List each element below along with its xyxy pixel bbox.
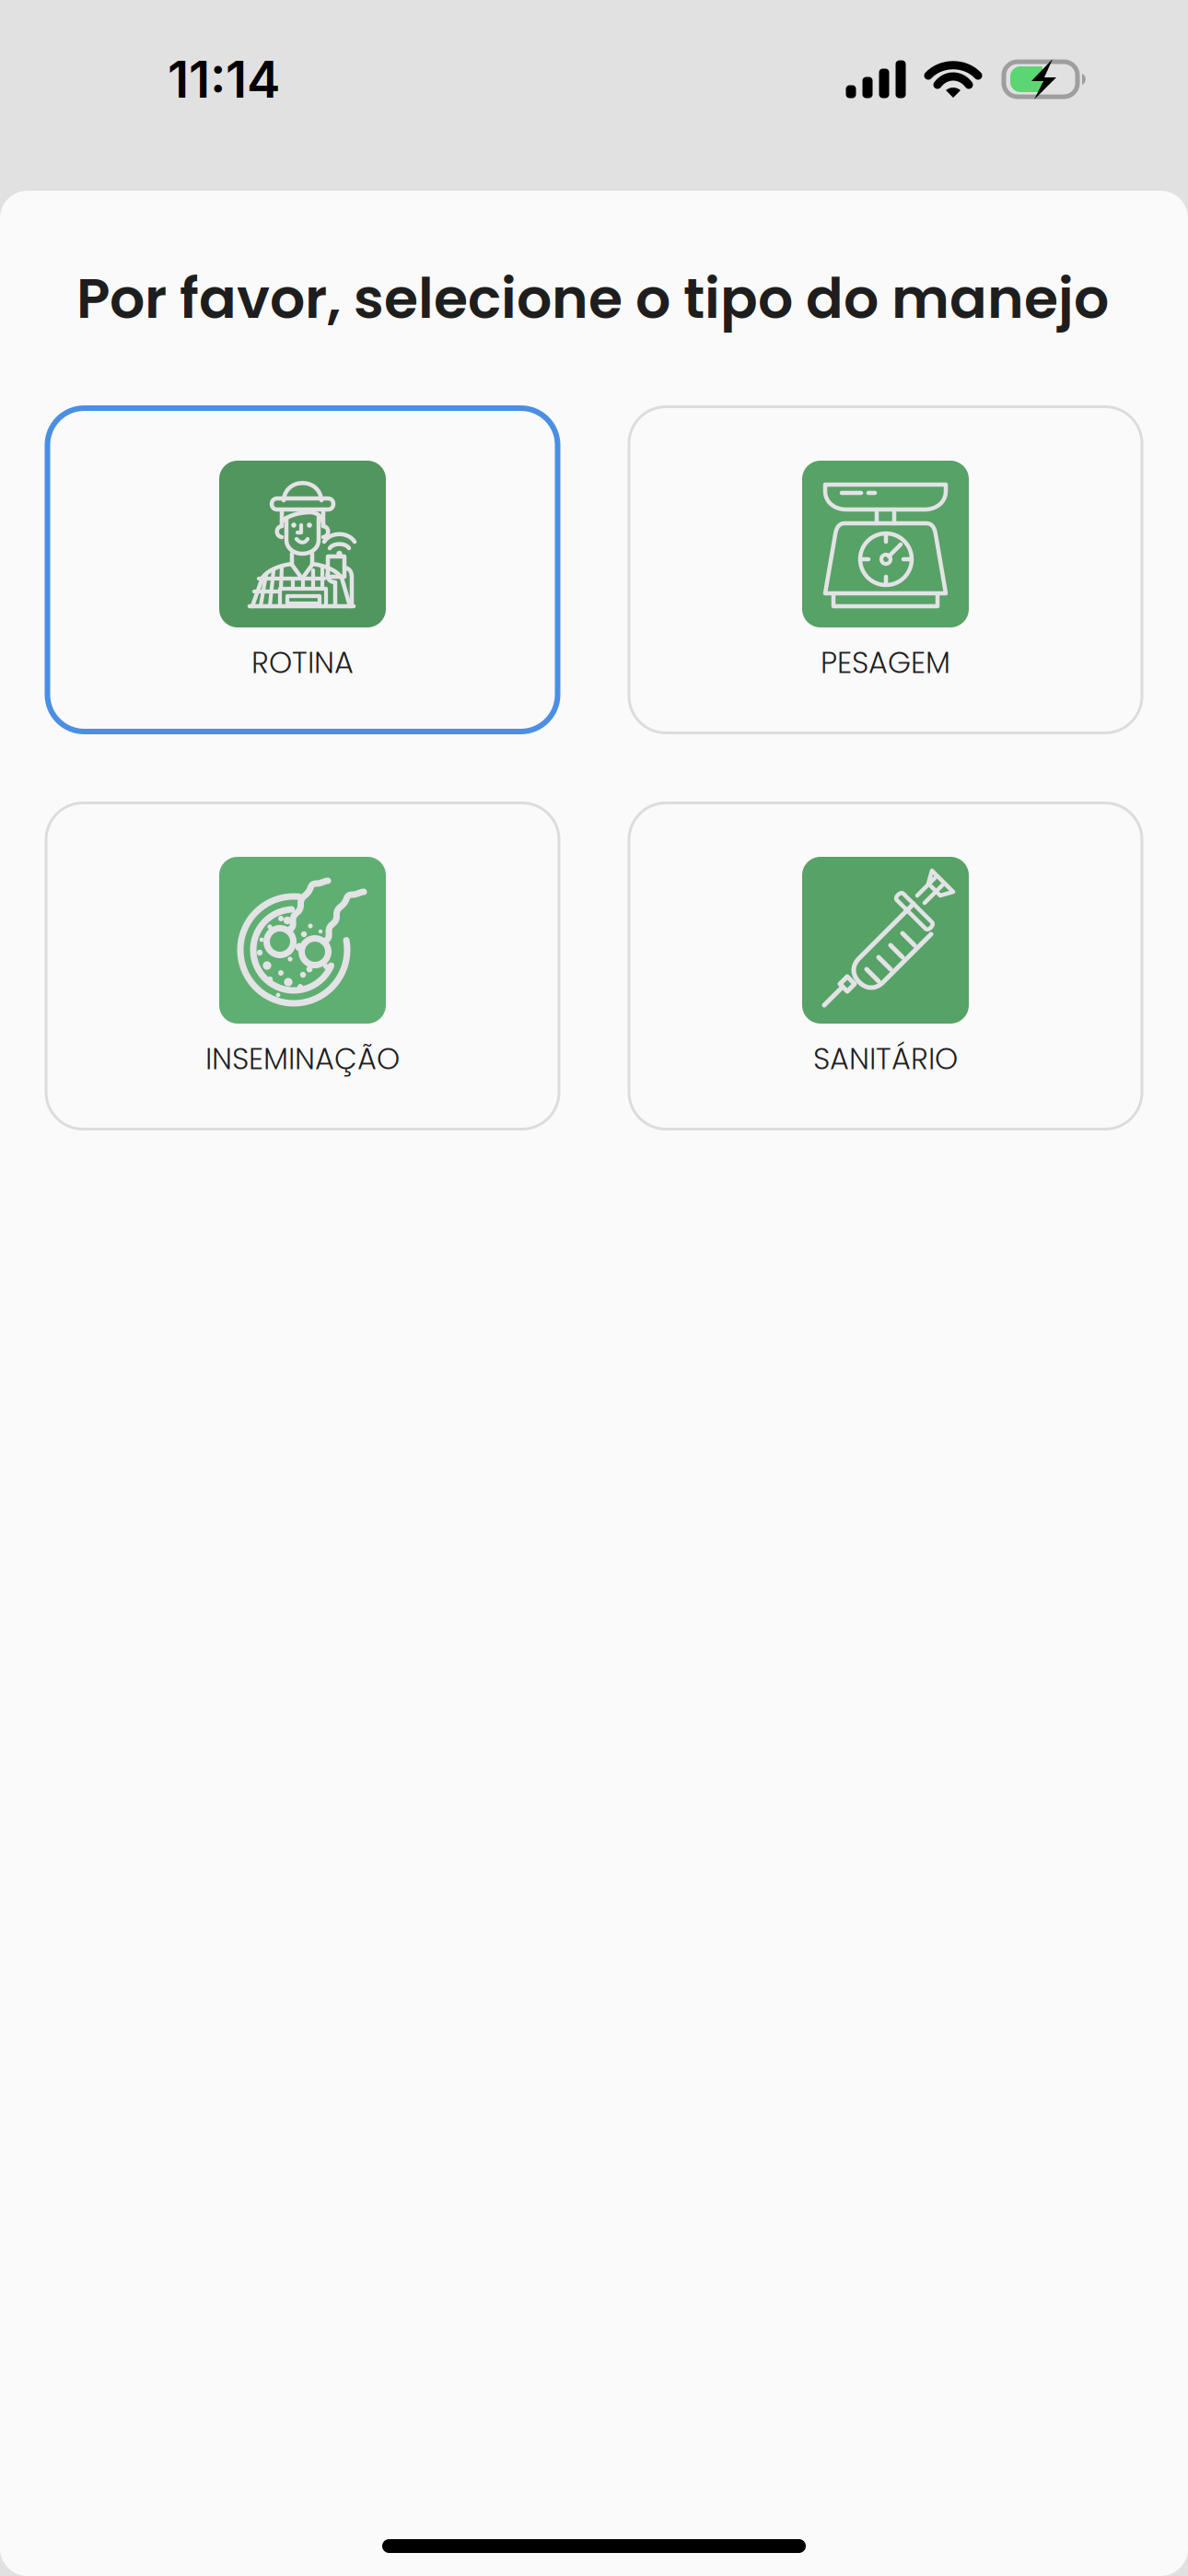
button[interactable]: PESAGEM bbox=[628, 405, 1143, 734]
staticText: 11:14 bbox=[168, 49, 280, 110]
button[interactable]: SANITÁRIO bbox=[628, 802, 1143, 1130]
staticText: Por favor, selecione o tipo do manejo bbox=[76, 260, 1109, 337]
staticText: INSEMINAÇÃO bbox=[205, 1038, 400, 1080]
staticText: PESAGEM bbox=[821, 642, 950, 683]
staticText: ROTINA bbox=[251, 642, 354, 683]
staticText: SANITÁRIO bbox=[813, 1038, 958, 1080]
button[interactable]: INSEMINAÇÃO bbox=[45, 802, 560, 1130]
button[interactable]: ROTINA bbox=[45, 405, 560, 734]
